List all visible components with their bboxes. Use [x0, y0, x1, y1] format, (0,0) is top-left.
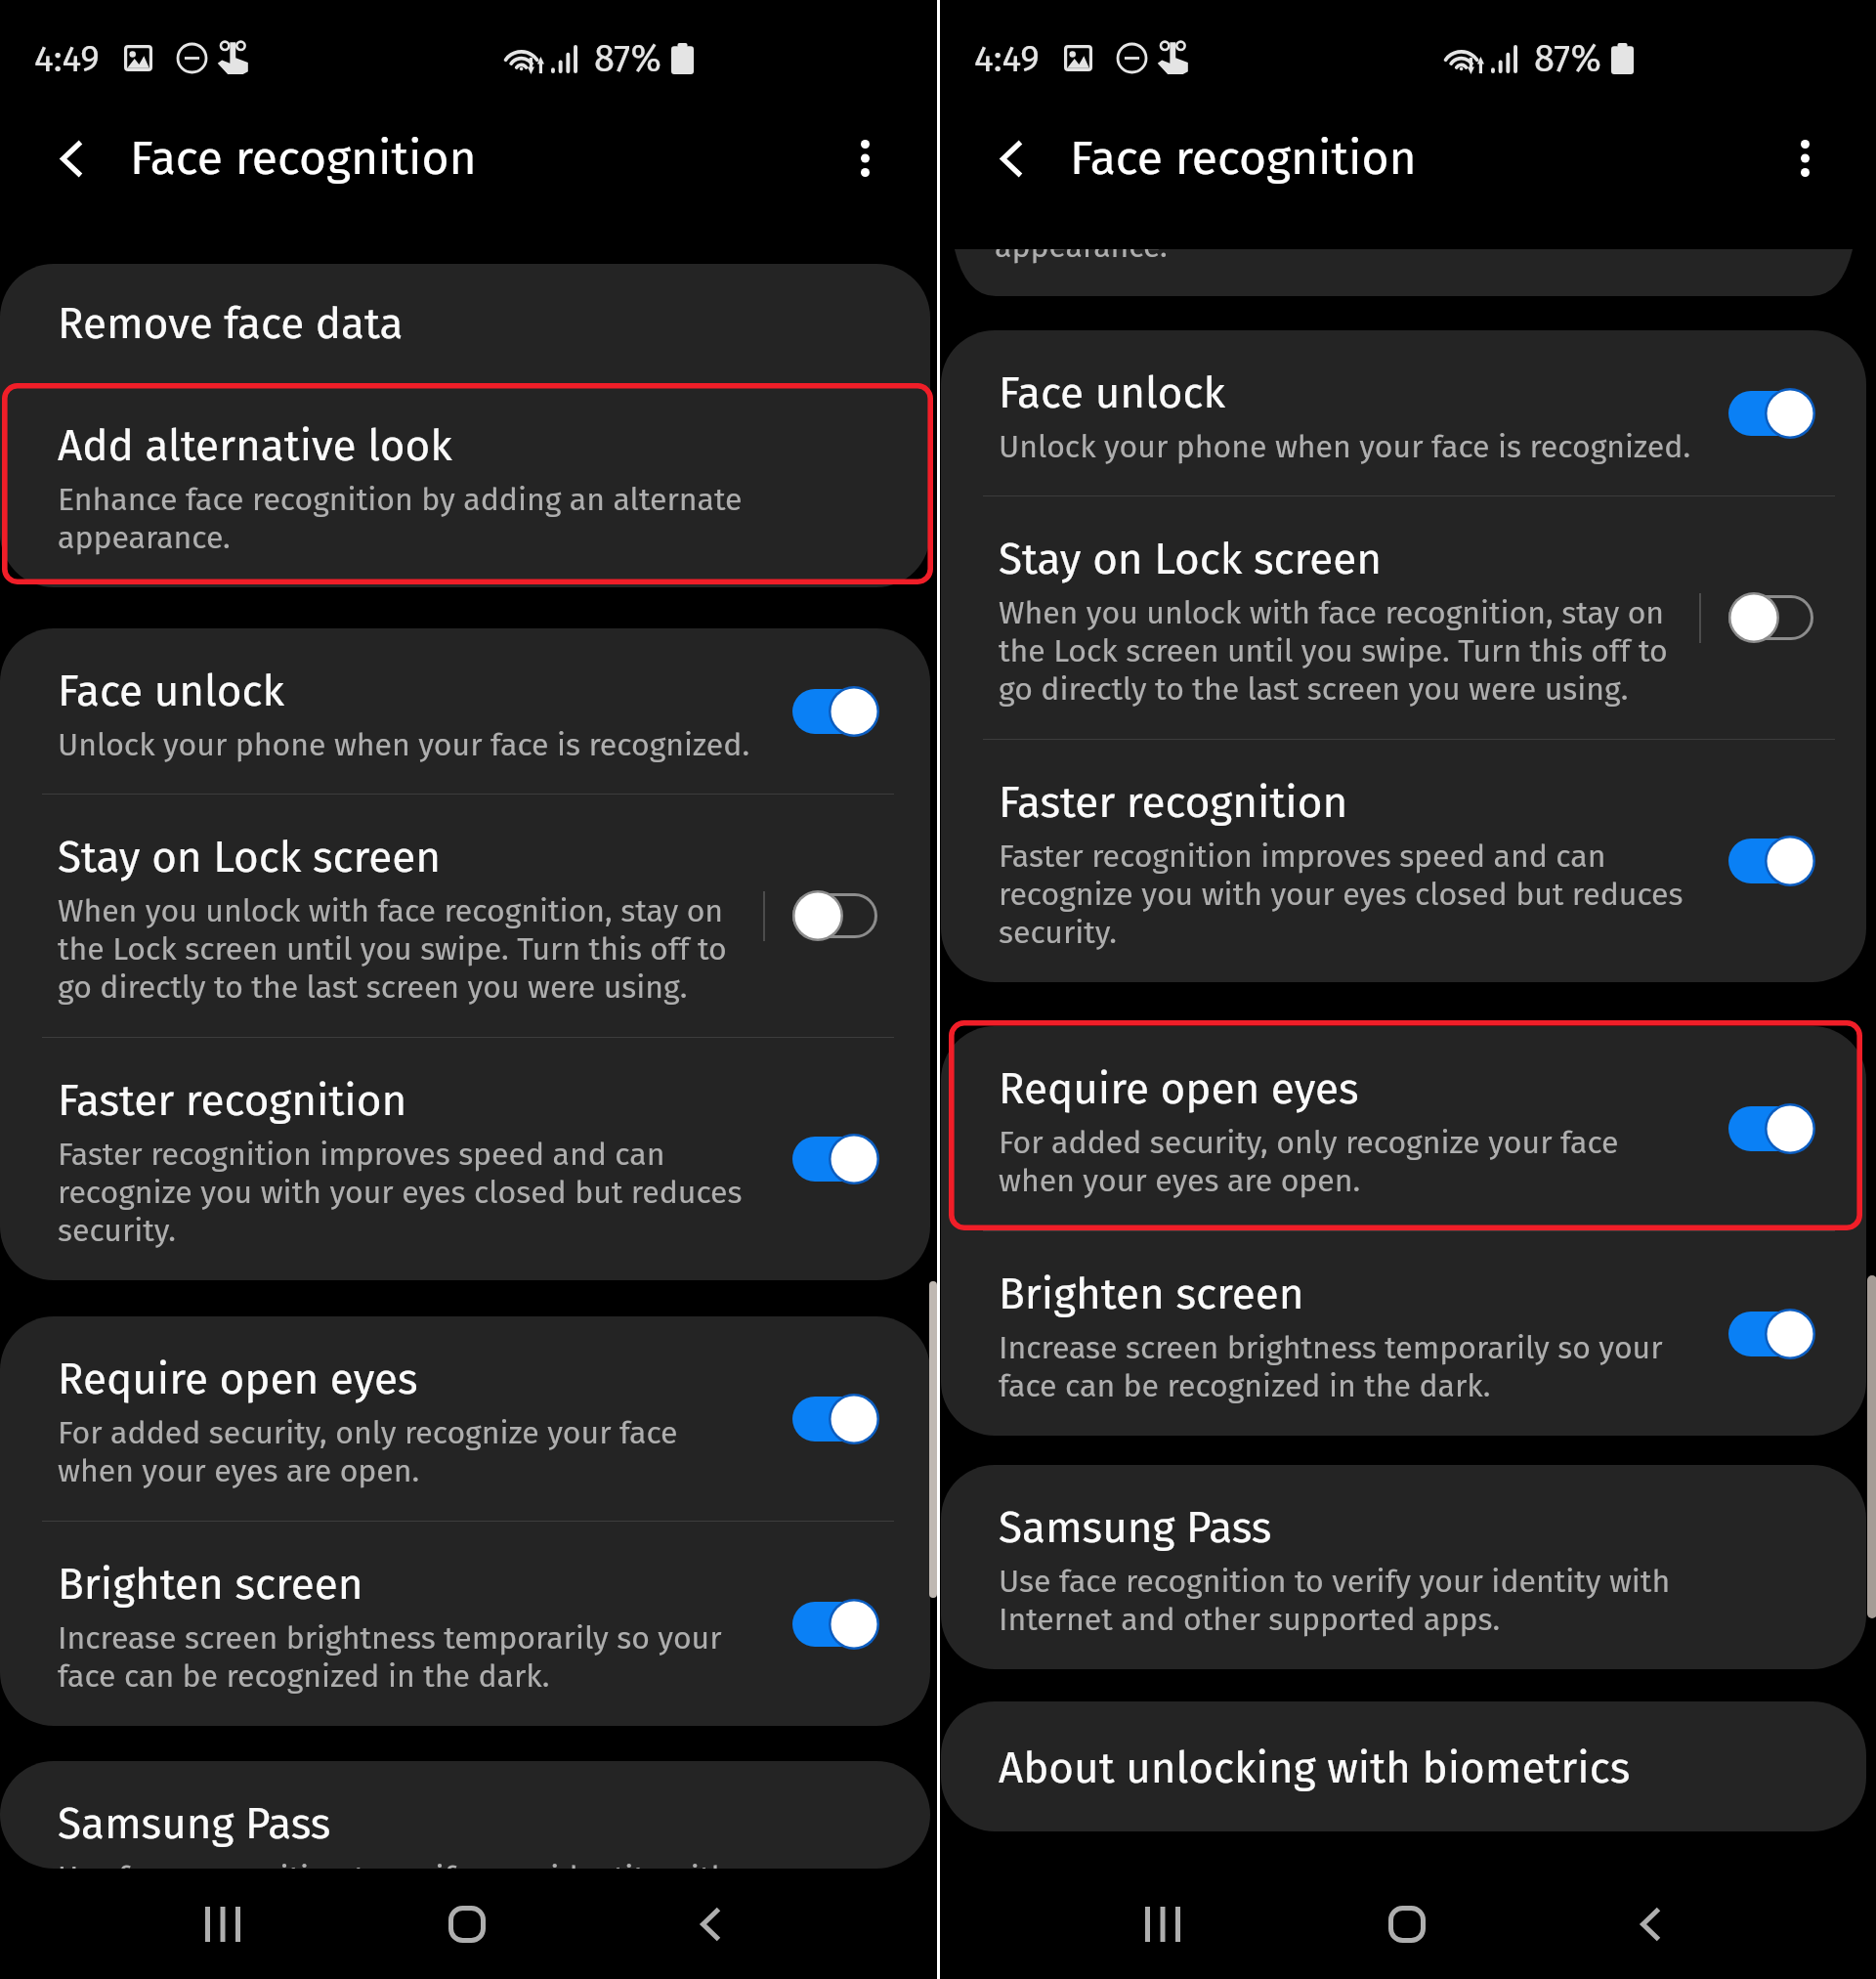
- staticText: About unlocking with biometrics: [999, 1742, 1631, 1794]
- button[interactable]: Brighten screen: [941, 1231, 1866, 1436]
- button[interactable]: About unlocking with biometrics: [941, 1701, 1866, 1831]
- button[interactable]: Enabled: [792, 1598, 879, 1651]
- staticText: Face recognition: [1070, 130, 1417, 187]
- staticText: 4:49: [34, 37, 100, 80]
- staticText: Unlock your phone when your face is reco…: [58, 726, 750, 763]
- button[interactable]: Disabled: [792, 889, 879, 942]
- button[interactable]: More options: [820, 113, 910, 203]
- button[interactable]: Enabled: [1728, 1308, 1815, 1360]
- staticText: 87%: [594, 36, 662, 81]
- button[interactable]: Enabled: [792, 1393, 879, 1445]
- staticText: For added security, only recognize your …: [999, 1124, 1697, 1200]
- staticText: Require open eyes: [999, 1063, 1359, 1115]
- button[interactable]: Navigate up: [26, 113, 116, 203]
- button[interactable]: Home: [1348, 1875, 1466, 1973]
- staticText: Faster recognition: [999, 777, 1348, 829]
- button[interactable]: Enabled: [792, 685, 879, 738]
- staticText: Face unlock: [999, 367, 1226, 419]
- button[interactable]: Samsung Pass: [941, 1465, 1866, 1669]
- staticText: For added security, only recognize your …: [58, 1414, 756, 1490]
- button[interactable]: Disabled: [1728, 591, 1815, 644]
- button[interactable]: Add alternative look: [0, 383, 930, 587]
- staticText: 87%: [1534, 36, 1602, 81]
- staticText: When you unlock with face recognition, s…: [999, 594, 1697, 709]
- button[interactable]: Face unlock: [0, 628, 930, 794]
- staticText: Unlock your phone when your face is reco…: [999, 428, 1691, 465]
- button[interactable]: Back: [652, 1875, 769, 1973]
- button[interactable]: Faster recognition: [941, 740, 1866, 982]
- staticText: Use face recognition to verify your iden…: [999, 1563, 1697, 1639]
- button[interactable]: Enabled: [1728, 1102, 1815, 1155]
- staticText: Increase screen brightness temporarily s…: [58, 1619, 756, 1696]
- button[interactable]: Back: [1592, 1875, 1709, 1973]
- staticText: When you unlock with face recognition, s…: [58, 892, 756, 1007]
- button[interactable]: Stay on Lock screen: [941, 496, 1866, 739]
- button[interactable]: Enabled: [792, 1133, 879, 1185]
- staticText: Stay on Lock screen: [999, 534, 1382, 585]
- staticText: Face recognition: [130, 130, 477, 187]
- staticText: Faster recognition: [58, 1075, 407, 1127]
- button[interactable]: Face unlock: [941, 330, 1866, 495]
- button[interactable]: Enabled: [1728, 387, 1815, 440]
- button[interactable]: Stay on Lock screen: [0, 795, 930, 1037]
- button[interactable]: Recent apps: [164, 1875, 281, 1973]
- button[interactable]: Navigate up: [966, 113, 1056, 203]
- staticText: Enhance face recognition by adding an al…: [58, 481, 756, 557]
- staticText: appearance.: [995, 249, 1168, 265]
- staticText: Brighten screen: [58, 1559, 363, 1611]
- button[interactable]: Enabled: [1728, 835, 1815, 887]
- button[interactable]: Samsung Pass: [0, 1761, 930, 1869]
- staticText: Use face recognition to verify your iden…: [58, 1859, 756, 1869]
- staticText: Faster recognition improves speed and ca…: [58, 1136, 756, 1250]
- staticText: Faster recognition improves speed and ca…: [999, 838, 1697, 952]
- staticText: Face unlock: [58, 666, 285, 717]
- staticText: Remove face data: [58, 298, 404, 350]
- button[interactable]: More options: [1760, 113, 1850, 203]
- staticText: Samsung Pass: [999, 1502, 1272, 1554]
- staticText: Add alternative look: [58, 420, 452, 472]
- staticText: Require open eyes: [58, 1354, 418, 1405]
- button[interactable]: Require open eyes: [0, 1316, 930, 1521]
- button[interactable]: Remove face data: [0, 264, 930, 383]
- button[interactable]: Require open eyes: [941, 1026, 1866, 1230]
- button[interactable]: Brighten screen: [0, 1522, 930, 1726]
- staticText: Stay on Lock screen: [58, 832, 441, 883]
- staticText: Increase screen brightness temporarily s…: [999, 1329, 1697, 1405]
- staticText: 4:49: [974, 37, 1040, 80]
- button[interactable]: Home: [408, 1875, 526, 1973]
- button[interactable]: Recent apps: [1104, 1875, 1221, 1973]
- staticText: Brighten screen: [999, 1269, 1304, 1320]
- staticText: Samsung Pass: [58, 1798, 331, 1850]
- button[interactable]: Faster recognition: [0, 1038, 930, 1280]
